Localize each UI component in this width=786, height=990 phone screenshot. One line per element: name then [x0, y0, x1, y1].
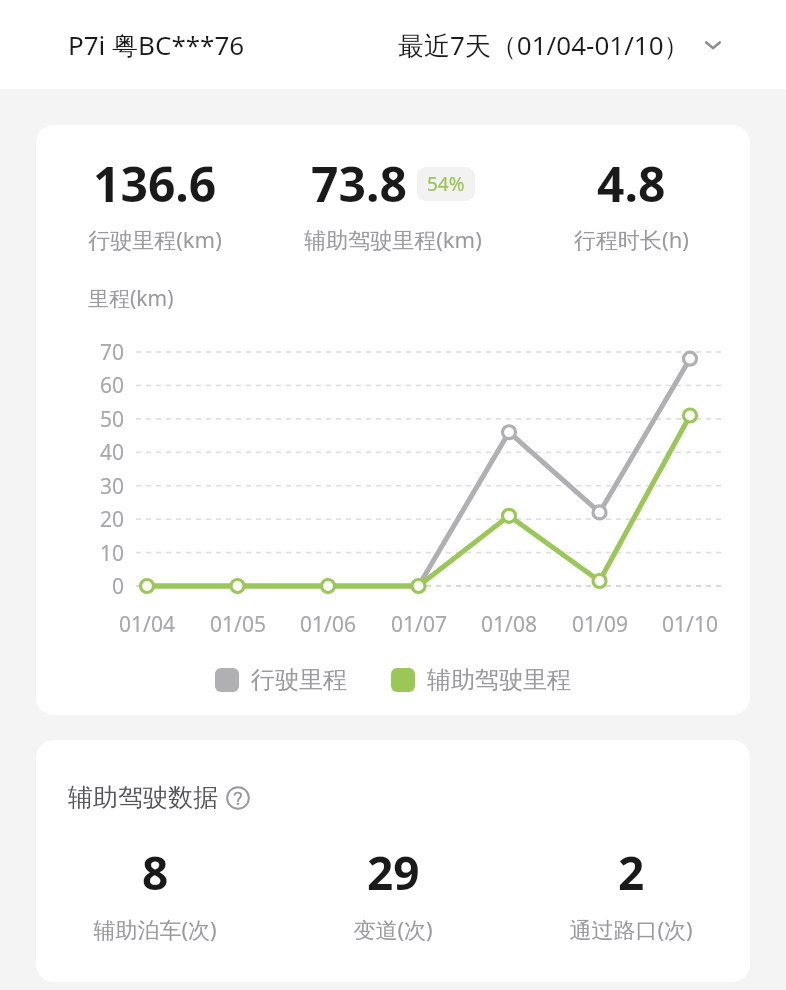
staticText: 01/07: [375, 610, 463, 639]
staticText: 最近7天（01/04-01/10）: [398, 27, 690, 63]
staticText: 通过路口(次): [569, 914, 693, 944]
staticText: 辅助驾驶里程: [427, 665, 571, 695]
staticText: 30: [66, 472, 124, 501]
staticText: 行驶里程(km): [88, 224, 222, 254]
staticText: 里程(km): [88, 284, 174, 313]
button[interactable]: 2: [512, 841, 750, 944]
staticText: 01/04: [103, 610, 191, 639]
staticText: 70: [66, 338, 124, 367]
staticText: 辅助驾驶数据: [68, 782, 218, 813]
staticText: 40: [66, 438, 124, 467]
staticText: 行程时长(h): [574, 224, 689, 254]
staticText: 0: [66, 572, 124, 601]
staticText: 29: [367, 841, 420, 904]
button[interactable]: 辅助驾驶里程: [391, 661, 571, 699]
button[interactable]: 辅助驾驶数据: [68, 780, 250, 815]
button[interactable]: 136.6: [36, 151, 274, 254]
staticText: 辅助驾驶里程(km): [304, 224, 482, 254]
button[interactable]: 29: [274, 841, 512, 944]
staticText: 2: [618, 841, 645, 904]
staticText: 01/09: [556, 610, 644, 639]
button[interactable]: 8: [36, 841, 274, 944]
staticText: 01/08: [465, 610, 553, 639]
button[interactable]: 4.8: [512, 151, 750, 254]
staticText: P7i 粤BC***76: [68, 27, 245, 63]
staticText: 4.8: [597, 151, 666, 216]
staticText: 行驶里程: [251, 665, 347, 695]
staticText: 20: [66, 505, 124, 534]
staticText: 辅助泊车(次): [93, 914, 217, 944]
staticText: 01/05: [194, 610, 282, 639]
staticText: 54%: [427, 171, 465, 197]
staticText: 60: [66, 371, 124, 400]
button[interactable]: 最近7天（01/04-01/10）: [394, 21, 730, 69]
other: Change date range: [700, 32, 726, 58]
staticText: 10: [66, 539, 124, 568]
button[interactable]: 行驶里程: [215, 661, 347, 699]
staticText: 50: [66, 405, 124, 434]
staticText: 变道(次): [353, 914, 433, 944]
button[interactable]: 73.8: [274, 151, 512, 254]
staticText: 73.8: [311, 151, 407, 216]
staticText: 136.6: [93, 151, 217, 216]
other: About assisted driving data: [226, 786, 250, 810]
staticText: 01/06: [284, 610, 372, 639]
staticText: 01/10: [646, 610, 734, 639]
staticText: 8: [142, 841, 169, 904]
